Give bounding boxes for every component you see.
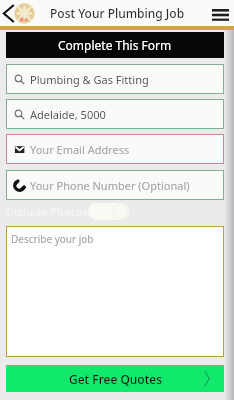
staticText: Adelaide, 5000 xyxy=(30,107,106,122)
staticText: Describe your job xyxy=(11,232,94,246)
button[interactable]: Your Email Address xyxy=(6,134,224,164)
button[interactable]: Your Phone Number (Optional) xyxy=(6,170,224,200)
button[interactable]: Menu xyxy=(209,2,231,28)
staticText: Complete This Form xyxy=(58,37,172,53)
button[interactable]: Include Photos xyxy=(6,202,224,221)
staticText: Get Free Quotes xyxy=(69,371,162,387)
button[interactable]: Get Free Quotes xyxy=(6,365,224,392)
button[interactable]: Describe your job xyxy=(6,226,224,357)
staticText: Your Phone Number (Optional) xyxy=(30,178,190,193)
button[interactable]: Back xyxy=(0,0,35,26)
staticText: Your Email Address xyxy=(30,142,130,157)
button[interactable]: Adelaide, 5000 xyxy=(6,99,224,129)
staticText: Plumbing & Gas Fitting xyxy=(30,72,149,87)
button[interactable]: Plumbing & Gas Fitting xyxy=(6,64,224,94)
staticText: Include Photos xyxy=(6,204,88,219)
staticText: Post Your Plumbing Job xyxy=(50,5,185,21)
